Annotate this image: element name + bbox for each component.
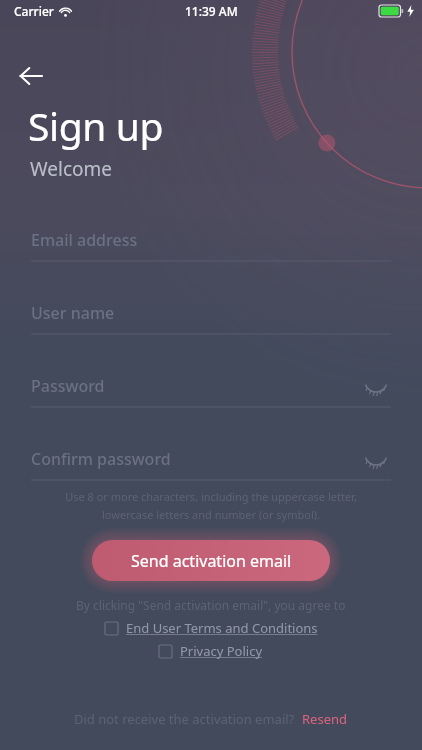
- button[interactable]: Back: [9, 54, 53, 98]
- button[interactable]: User name: [31, 302, 391, 344]
- staticText: Did not receive the activation email?: [74, 710, 295, 728]
- staticText: Password: [31, 375, 105, 397]
- staticText: Confirm password: [31, 448, 171, 470]
- button[interactable]: Confirm password: [31, 448, 391, 490]
- staticText: lowercase letters and number (or symbol)…: [102, 507, 320, 522]
- staticText: Privacy Policy: [180, 642, 263, 660]
- button[interactable]: Send activation email: [92, 540, 330, 581]
- staticText: User name: [31, 302, 115, 324]
- staticText: Carrier: [14, 3, 54, 19]
- staticText: Resend: [302, 710, 348, 728]
- staticText: 11:39 AM: [185, 3, 238, 19]
- staticText: End User Terms and Conditions: [126, 619, 318, 637]
- button[interactable]: Show password: [361, 373, 391, 403]
- button[interactable]: End User Terms and Conditions: [105, 619, 318, 637]
- staticText: By clicking "Send activation email", you…: [76, 597, 346, 613]
- button[interactable]: Privacy Policy: [159, 642, 263, 660]
- staticText: Use 8 or more characters, including the …: [65, 489, 357, 504]
- staticText: Welcome: [30, 156, 113, 182]
- button[interactable]: Show password: [361, 446, 391, 476]
- staticText: Sign up: [28, 99, 163, 152]
- staticText: Send activation email: [131, 550, 292, 572]
- button[interactable]: Password: [31, 375, 391, 417]
- button[interactable]: Email address: [31, 229, 391, 271]
- staticText: Email address: [31, 229, 138, 251]
- button[interactable]: Resend: [302, 710, 348, 728]
